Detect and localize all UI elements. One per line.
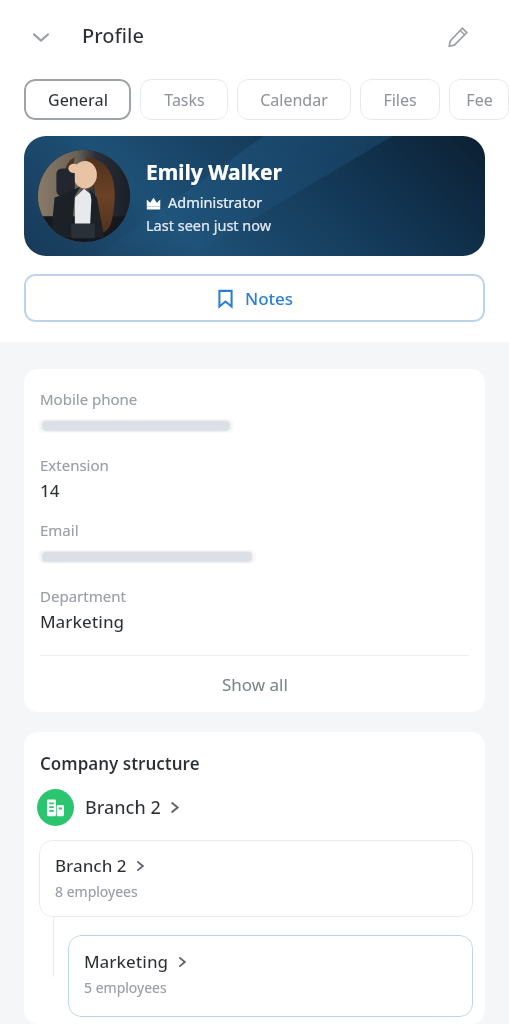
staticText: 5 employees (84, 978, 167, 997)
button[interactable]: Emily Walker (24, 136, 485, 256)
staticText: Fee (466, 89, 493, 111)
staticText: Marketing (40, 610, 125, 633)
button[interactable]: Collapse (24, 20, 58, 54)
staticText: Extension (40, 455, 109, 475)
staticText: Profile (82, 22, 144, 49)
button[interactable]: Edit (440, 19, 476, 55)
staticText: Tasks (164, 89, 205, 111)
staticText: Files (383, 89, 417, 111)
staticText: General (48, 89, 108, 111)
staticText: Email (40, 520, 79, 540)
staticText: Notes (245, 287, 294, 310)
staticText: Administrator (168, 192, 263, 212)
staticText: Department (40, 586, 126, 606)
staticText: Branch 2 (55, 854, 127, 877)
button[interactable]: Marketing (68, 935, 473, 1017)
button[interactable]: General (24, 79, 131, 120)
button[interactable]: Fee (449, 79, 509, 120)
button[interactable]: Notes (24, 274, 485, 322)
button[interactable]: Branch 2 (37, 789, 181, 826)
staticText: Branch 2 (85, 795, 161, 820)
staticText: Emily Walker (146, 158, 282, 187)
staticText: 14 (40, 479, 60, 502)
staticText: Marketing (84, 950, 169, 973)
button[interactable]: Calendar (237, 79, 351, 120)
staticText: Calendar (260, 89, 328, 111)
staticText: 8 employees (55, 882, 138, 901)
button[interactable]: Show all (24, 656, 485, 712)
button[interactable]: Branch 2 (39, 840, 473, 917)
staticText: Company structure (40, 752, 200, 775)
button[interactable]: Tasks (140, 79, 228, 120)
staticText: Mobile phone (40, 389, 138, 409)
staticText: Show all (222, 673, 288, 696)
staticText: Last seen just now (146, 215, 272, 235)
button[interactable]: Files (360, 79, 440, 120)
